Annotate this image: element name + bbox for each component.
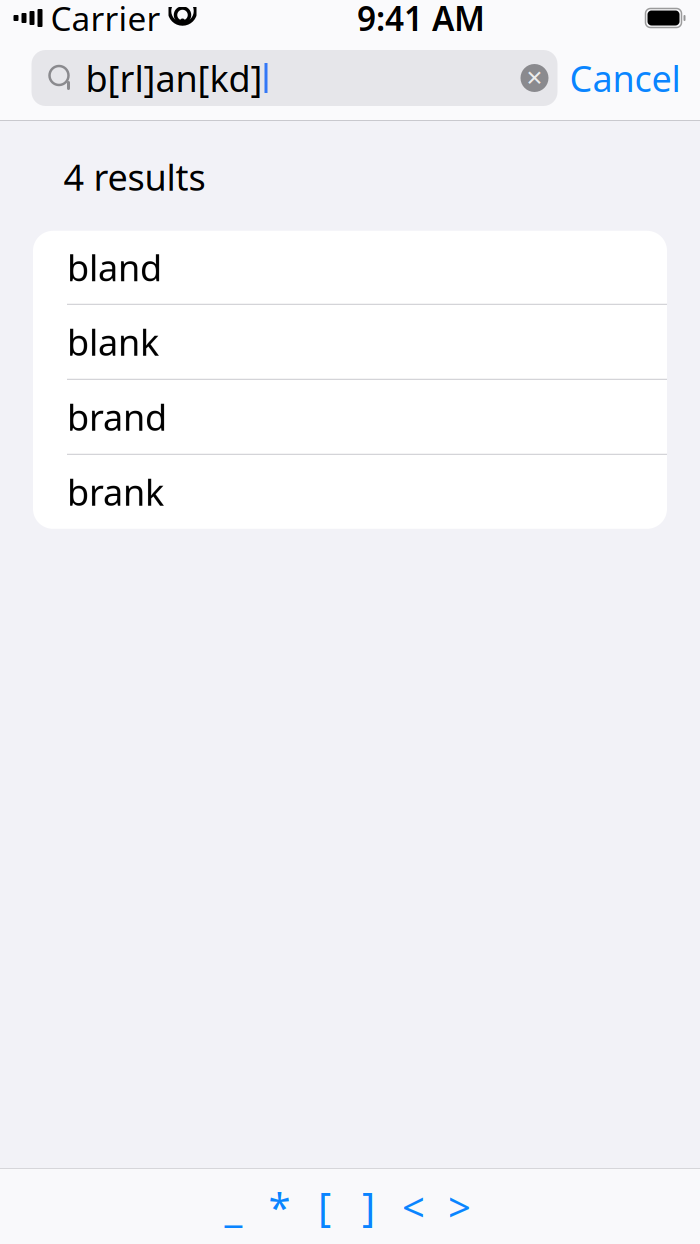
staticText: blank: [67, 318, 159, 366]
staticText: *: [268, 1180, 290, 1233]
staticText: 9:41 AM: [357, 0, 485, 40]
button[interactable]: *: [256, 1176, 302, 1236]
staticText: b[rl]an[kd]: [85, 54, 262, 102]
staticText: >: [448, 1180, 471, 1233]
button[interactable]: [: [302, 1176, 346, 1236]
staticText: Carrier: [50, 0, 160, 40]
button[interactable]: <: [390, 1176, 436, 1236]
staticText: Cancel: [569, 54, 680, 102]
button[interactable]: Clear text: [512, 56, 556, 100]
staticText: brand: [67, 393, 167, 441]
button[interactable]: blank: [33, 305, 667, 380]
staticText: brank: [67, 468, 164, 516]
staticText: 4 results: [63, 153, 205, 201]
button[interactable]: bland: [33, 231, 667, 305]
staticText: ]: [362, 1180, 375, 1233]
button[interactable]: Cancel: [557, 50, 692, 106]
staticText: _: [224, 1180, 242, 1233]
staticText: [: [318, 1180, 331, 1233]
button[interactable]: ]: [346, 1176, 390, 1236]
button[interactable]: brank: [33, 455, 667, 529]
button[interactable]: _: [210, 1176, 256, 1236]
staticText: ✕: [525, 66, 543, 90]
button[interactable]: brand: [33, 380, 667, 455]
button[interactable]: >: [436, 1176, 482, 1236]
staticText: <: [402, 1180, 425, 1233]
staticText: bland: [67, 243, 162, 291]
